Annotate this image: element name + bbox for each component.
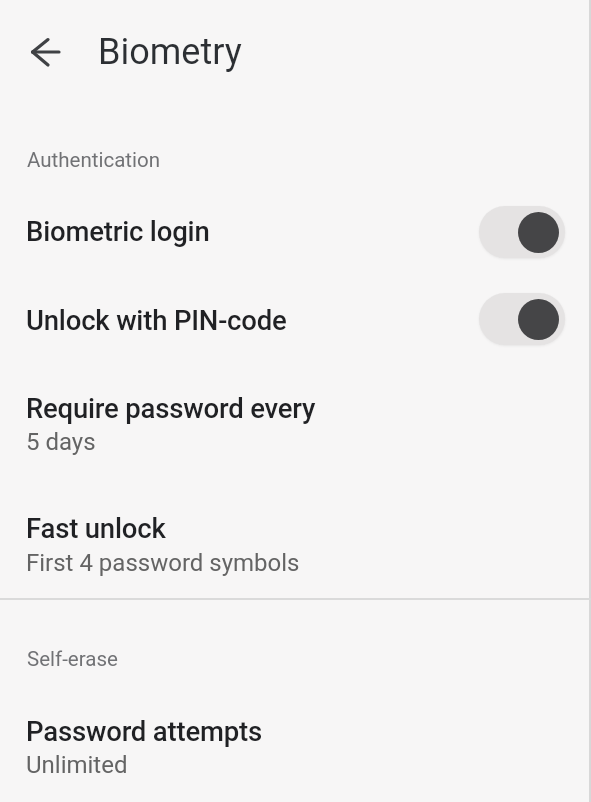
staticText: Fast unlock [26, 512, 166, 544]
staticText: Unlimited [26, 751, 128, 779]
button[interactable] [22, 28, 70, 76]
staticText: Biometry [98, 31, 242, 73]
staticText: Password attempts [26, 715, 262, 747]
staticText: Self-erase [27, 647, 118, 671]
button[interactable]: Require password every [0, 376, 591, 472]
button[interactable]: Password attempts [0, 704, 591, 796]
button[interactable]: Biometric login [0, 188, 591, 276]
staticText: Unlock with PIN-code [26, 304, 287, 336]
staticText: Biometric login [26, 215, 210, 247]
button[interactable] [479, 293, 565, 345]
staticText: First 4 password symbols [26, 549, 300, 577]
staticText: Require password every [26, 392, 316, 424]
button[interactable] [479, 206, 565, 258]
button[interactable]: Unlock with PIN-code [0, 276, 591, 363]
staticText: Authentication [27, 148, 161, 172]
button[interactable]: Fast unlock [0, 496, 591, 592]
staticText: 5 days [26, 428, 96, 456]
